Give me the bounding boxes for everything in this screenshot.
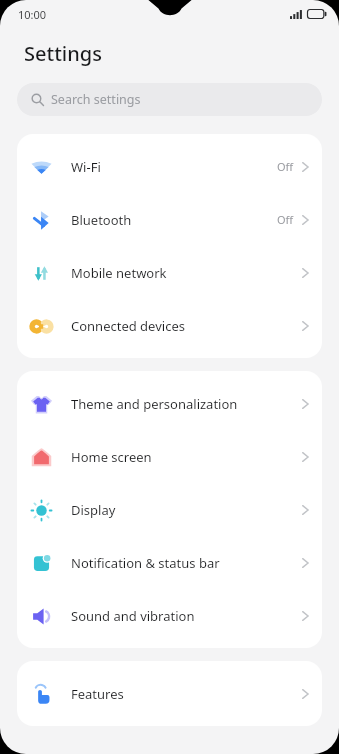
staticText: Bluetooth [71,211,277,229]
button[interactable]: Features [17,667,322,720]
other: Mobile network [28,260,54,286]
other: Wi-Fi [28,154,54,180]
button[interactable]: Search settings [17,83,322,116]
staticText: Wi-Fi [71,158,277,176]
button[interactable]: Home screen [17,430,322,483]
other: Display [28,497,54,523]
button[interactable]: Display [17,483,322,536]
staticText: Off [277,159,294,174]
button[interactable]: Theme [17,377,322,430]
other: Notifications [28,550,54,576]
staticText: Theme and personalization [71,395,302,413]
button[interactable]: Wi-Fi [17,140,322,193]
staticText: Display [71,501,302,519]
other: Theme [28,391,54,417]
button[interactable]: Connected devices [17,299,322,352]
button[interactable]: Sound [17,589,322,642]
other: Connected devices [28,313,54,339]
button[interactable]: Bluetooth [17,193,322,246]
staticText: Sound and vibration [71,607,302,625]
other: Bluetooth [28,207,54,233]
other: Home screen [28,444,54,470]
button[interactable]: Mobile network [17,246,322,299]
staticText: Settings [24,40,102,67]
staticText: Off [277,212,294,227]
staticText: Search settings [51,91,141,108]
staticText: Home screen [71,448,302,466]
staticText: Features [71,685,302,703]
staticText: Connected devices [71,317,302,335]
staticText: Mobile network [71,264,302,282]
button[interactable]: Notifications [17,536,322,589]
other: Sound [28,603,54,629]
staticText: 10:00 [18,7,47,22]
other: Features [28,681,54,707]
staticText: Notification & status bar [71,554,302,572]
